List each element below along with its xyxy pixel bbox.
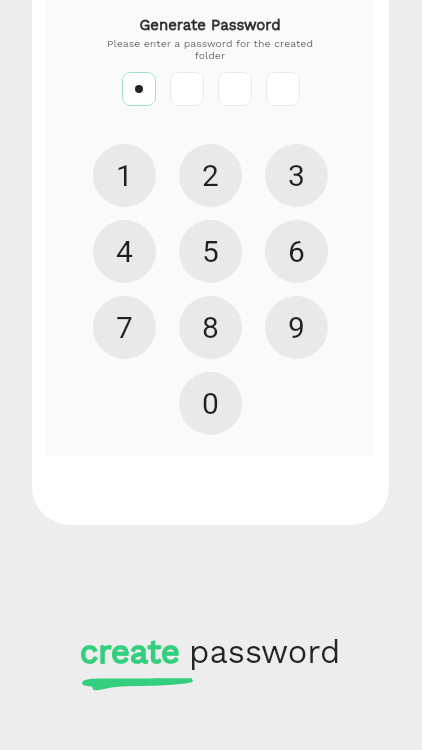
staticText: 7: [116, 310, 133, 345]
staticText: password: [189, 633, 341, 671]
button[interactable]: [170, 72, 204, 106]
button[interactable]: 5: [179, 220, 242, 283]
button[interactable]: [122, 72, 156, 106]
button[interactable]: [218, 72, 252, 106]
button[interactable]: 8: [179, 296, 242, 359]
staticText: Generate Password: [139, 16, 281, 34]
staticText: create: [80, 633, 180, 671]
staticText: 5: [202, 234, 219, 269]
staticText: Generate Password: [139, 16, 281, 34]
staticText: 6: [288, 234, 305, 269]
button[interactable]: 9: [265, 296, 328, 359]
button[interactable]: 0: [179, 372, 242, 435]
staticText: 3: [288, 158, 305, 193]
button[interactable]: 6: [265, 220, 328, 283]
button[interactable]: 2: [179, 144, 242, 207]
staticText: 1: [116, 158, 133, 193]
button[interactable]: 7: [93, 296, 156, 359]
button[interactable]: 3: [265, 144, 328, 207]
button[interactable]: 4: [93, 220, 156, 283]
staticText: 8: [202, 310, 219, 345]
staticText: Please enter a password for the created …: [105, 37, 315, 62]
staticText: create: [80, 633, 180, 671]
staticText: 9: [288, 310, 305, 345]
button[interactable]: [266, 72, 300, 106]
button[interactable]: 1: [93, 144, 156, 207]
staticText: 2: [202, 158, 219, 193]
staticText: 0: [202, 386, 219, 421]
staticText: 4: [116, 234, 133, 269]
